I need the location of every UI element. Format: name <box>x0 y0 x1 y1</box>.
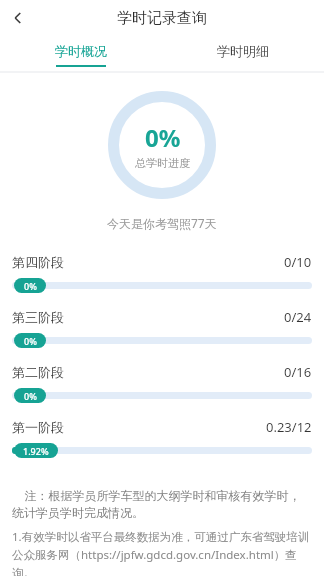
button[interactable]: 第二阶段 <box>0 363 324 418</box>
staticText: 0% <box>145 121 181 154</box>
staticText: 0% <box>24 280 37 292</box>
staticText: 0/24 <box>284 308 312 326</box>
staticText: 第三阶段 <box>12 309 64 325</box>
staticText: 注：根据学员所学车型的大纲学时和审核有效学时，统计学员学时完成情况。 <box>12 487 312 521</box>
button[interactable]: 第四阶段 <box>0 253 324 308</box>
staticText: 0/10 <box>284 253 312 271</box>
staticText: 总学时进度 <box>135 156 190 170</box>
button[interactable]: 学时明细 <box>162 36 324 71</box>
button[interactable]: Back <box>0 0 36 36</box>
staticText: 学时记录查询 <box>117 9 207 28</box>
staticText: 学时明细 <box>217 43 269 59</box>
staticText: 0.23/12 <box>266 418 312 436</box>
button[interactable]: 学时概况 <box>0 36 162 71</box>
staticText: 第四阶段 <box>12 254 64 270</box>
staticText: 第一阶段 <box>12 419 64 435</box>
staticText: 0/16 <box>284 363 312 381</box>
staticText: 今天是你考驾照77天 <box>107 215 217 231</box>
staticText: 学时概况 <box>55 43 107 59</box>
button[interactable]: 第一阶段 <box>0 418 324 473</box>
button[interactable]: 第三阶段 <box>0 308 324 363</box>
staticText: 0% <box>24 390 37 402</box>
staticText: 1.有效学时以省平台最终数据为准，可通过广东省驾驶培训公众服务网（https:/… <box>12 529 312 576</box>
staticText: 0% <box>24 335 37 347</box>
staticText: 1.92% <box>23 445 49 457</box>
staticText: 第二阶段 <box>12 364 64 380</box>
